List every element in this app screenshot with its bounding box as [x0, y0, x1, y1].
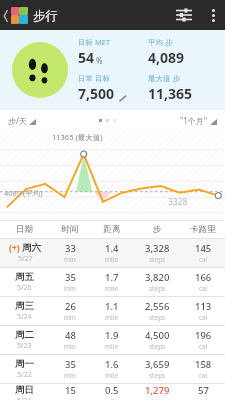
staticText: cal [199, 397, 208, 400]
button[interactable]: Walking [12, 42, 68, 98]
staticText: 周五 [15, 271, 34, 283]
staticText: mile [105, 397, 119, 400]
staticText: mile [105, 313, 119, 322]
staticText: 步/天 [8, 115, 27, 126]
staticText: 周六 [22, 242, 41, 254]
staticText: 1.6 [105, 358, 119, 371]
staticText: 3328 [168, 196, 188, 208]
button[interactable]: "1个月" [180, 115, 217, 126]
staticText: min [64, 397, 76, 400]
staticText: cal [199, 255, 208, 264]
staticText: 33 [65, 242, 76, 255]
staticText: 5/24 [17, 312, 32, 322]
button[interactable]: 目标 MET [78, 37, 148, 67]
staticText: 0.5 [105, 384, 119, 397]
staticText: 卡路里 [181, 224, 225, 235]
button[interactable]: 周五 [0, 267, 225, 296]
staticText: 5/21 [17, 396, 32, 400]
staticText: 5/26 [17, 283, 32, 293]
staticText: 日期 [0, 224, 49, 235]
staticText: 3,328 [145, 242, 170, 255]
button[interactable]: 周三 [0, 296, 225, 325]
staticText: 5/23 [17, 341, 32, 351]
staticText: min [64, 371, 76, 380]
staticText: steps [149, 255, 166, 264]
staticText: 5/22 [17, 370, 32, 380]
button[interactable]: 周日 [0, 383, 225, 400]
staticText: 日常 目标 [78, 73, 110, 83]
staticText: "1个月" [180, 115, 208, 126]
staticText: 11,365 [148, 84, 193, 103]
staticText: 2,556 [145, 300, 170, 313]
staticText: min [64, 313, 76, 322]
staticText: 4,089 [148, 48, 185, 67]
staticText: 54 [78, 48, 95, 67]
staticText: 步行 [33, 8, 58, 24]
staticText: 11365 (最大值) [52, 132, 103, 142]
staticText: min [64, 342, 76, 351]
staticText: mile [105, 284, 119, 293]
staticText: 35 [65, 358, 76, 371]
staticText: 57 [198, 384, 209, 397]
staticText: 7,500 [78, 84, 115, 103]
staticText: 目标 MET [78, 37, 111, 47]
staticText: 3,659 [145, 358, 170, 371]
button[interactable]: 周二 [0, 325, 225, 354]
staticText: cal [199, 342, 208, 351]
staticText: steps [149, 397, 166, 400]
button[interactable]: (+) [0, 238, 225, 267]
staticText: 166 [195, 271, 212, 284]
staticText: 最大值 步 [148, 73, 180, 83]
staticText: % [96, 55, 103, 66]
staticText: 113 [195, 300, 212, 313]
button[interactable]: 最大值 步 [148, 73, 219, 103]
staticText: min [64, 284, 76, 293]
staticText: 1.4 [105, 242, 119, 255]
button[interactable]: 步/天 [8, 115, 36, 126]
staticText: 周二 [15, 329, 34, 341]
staticText: 时间 [49, 224, 91, 235]
staticText: cal [199, 284, 208, 293]
staticText: steps [149, 371, 166, 380]
staticText: cal [199, 313, 208, 322]
button[interactable]: 平均 步 [148, 37, 219, 67]
staticText: 1.7 [105, 271, 119, 284]
staticText: 158 [195, 358, 212, 371]
staticText: steps [149, 284, 166, 293]
staticText: 平均 步 [148, 37, 173, 47]
other: Back [3, 10, 9, 22]
staticText: cal [199, 371, 208, 380]
staticText: mile [105, 371, 119, 380]
button[interactable]: 周一 [0, 354, 225, 383]
staticText: steps [149, 342, 166, 351]
staticText: 5/27 [18, 254, 33, 264]
staticText: 48 [65, 329, 76, 342]
staticText: (+) [9, 242, 20, 254]
staticText: 周一 [15, 358, 34, 370]
staticText: 26 [65, 300, 76, 313]
button[interactable]: More options [201, 0, 225, 30]
staticText: 周三 [15, 300, 34, 312]
staticText: 1,279 [145, 384, 170, 397]
staticText: mile [105, 255, 119, 264]
staticText: 1.1 [105, 300, 119, 313]
staticText: 35 [65, 271, 76, 284]
staticText: mile [105, 342, 119, 351]
staticText: 4,500 [145, 329, 170, 342]
button[interactable]: Back [0, 7, 60, 24]
button[interactable]: Settings [167, 0, 201, 30]
staticText: steps [149, 313, 166, 322]
staticText: 196 [195, 329, 212, 342]
staticText: 步 [133, 224, 181, 235]
staticText: min [64, 255, 76, 264]
staticText: 15 [65, 384, 76, 397]
staticText: 距离 [91, 224, 133, 235]
staticText: 3,820 [145, 271, 170, 284]
staticText: 周日 [15, 384, 34, 396]
staticText: 1.9 [105, 329, 119, 342]
staticText: 4089 (平均) [4, 188, 43, 198]
button[interactable]: 日常 目标 [78, 73, 148, 103]
staticText: 145 [195, 242, 212, 255]
